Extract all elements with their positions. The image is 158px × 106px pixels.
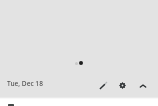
button[interactable]: Settings — [114, 77, 130, 93]
staticText: Tue, Dec 18 — [7, 79, 43, 88]
button[interactable]: Collapse — [135, 78, 151, 94]
button[interactable]: Edit — [95, 77, 111, 93]
